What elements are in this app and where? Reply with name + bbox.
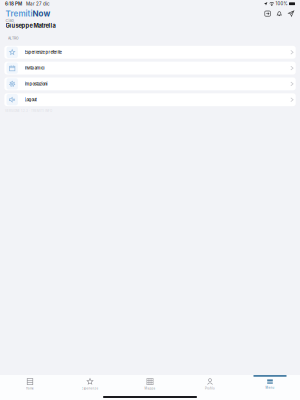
button[interactable]: Accedi	[262, 9, 274, 18]
button[interactable]: Esperienze preferite	[4, 46, 296, 59]
staticText: Home	[26, 387, 34, 390]
button[interactable]: Esperienze	[60, 375, 120, 392]
staticText: Logout	[24, 97, 36, 102]
staticText: Esperienze	[81, 387, 98, 390]
staticText: Now	[32, 9, 50, 18]
staticText: Impostazioni	[24, 81, 47, 86]
staticText: Mar 27 dic	[26, 1, 50, 6]
staticText: Ciao,	[5, 18, 14, 23]
button[interactable]: Impostazioni	[4, 77, 296, 90]
staticText: Mappa	[144, 387, 155, 390]
button[interactable]: Mappa	[120, 375, 180, 392]
staticText: Giuseppe Matrella	[5, 22, 55, 29]
staticText: 6:18 PM	[5, 1, 22, 6]
staticText: Esperienze preferite	[24, 50, 61, 55]
button[interactable]: Menu	[240, 375, 300, 392]
staticText: 100%	[276, 1, 288, 6]
staticText: Menu	[265, 386, 274, 389]
staticText: Invita amici	[24, 66, 44, 71]
button[interactable]: Profilo	[180, 375, 240, 392]
staticText: Profilo	[205, 387, 215, 390]
button[interactable]: Home	[0, 375, 60, 392]
button[interactable]: Notifiche	[274, 9, 285, 18]
button[interactable]: Invia	[285, 9, 295, 18]
staticText: ALTRO	[8, 36, 19, 40]
button[interactable]: Logout	[4, 93, 296, 106]
button[interactable]: Invita amici	[4, 62, 296, 74]
staticText: Tremiti	[5, 9, 32, 18]
staticText: VERSIONE 1.2.3 · TREMITI INFO	[5, 109, 52, 113]
